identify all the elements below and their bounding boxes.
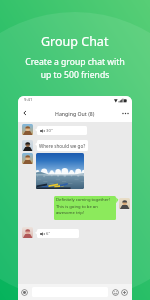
staticText: 6'' (46, 231, 51, 237)
button[interactable]: Avatar (22, 124, 33, 135)
button[interactable]: Voice input (21, 289, 28, 296)
staticText: Where should we go? (39, 143, 86, 149)
button[interactable]: Photo (36, 153, 84, 189)
button[interactable]: Emoji (112, 289, 119, 296)
button[interactable]: Avatar (119, 198, 130, 209)
staticText: Hanging Out (8) (55, 110, 95, 117)
button[interactable]: Avatar (22, 227, 33, 238)
button[interactable]: More options (121, 109, 130, 118)
button[interactable]: Where should we go? (37, 140, 88, 151)
staticText: 9:41 (24, 97, 33, 103)
button[interactable]: Back (21, 109, 29, 117)
button[interactable]: Definitely coming together! This is goin… (56, 197, 116, 220)
staticText: 30'' (46, 128, 53, 134)
staticText: Group Chat (41, 33, 109, 50)
staticText: Create a group chat with up to 500 frien… (25, 56, 125, 81)
button[interactable]: 6'' (40, 229, 76, 238)
button[interactable]: Avatar (22, 153, 33, 164)
button[interactable]: Avatar (22, 140, 33, 151)
button[interactable]: Add (121, 289, 128, 296)
button[interactable]: 30'' (40, 126, 84, 135)
staticText: Definitely coming together! This is goin… (56, 197, 110, 215)
